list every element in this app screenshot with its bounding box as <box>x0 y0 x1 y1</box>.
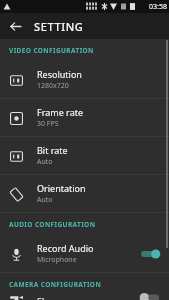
button[interactable]: Show camera <box>0 295 169 300</box>
button[interactable]: Resolution <box>0 61 169 98</box>
staticText: Microphone <box>37 255 77 265</box>
staticText: 03:58 <box>149 2 167 12</box>
staticText: SETTING <box>34 19 84 34</box>
staticText: Orientation <box>37 182 86 194</box>
staticText: Auto <box>37 157 53 167</box>
button[interactable]: Toggle on <box>139 247 161 261</box>
staticText: CAMERA CONFIGURATION <box>9 280 102 289</box>
staticText: Resolution <box>37 68 82 80</box>
button[interactable]: Toggle off <box>139 295 161 300</box>
button[interactable]: Back <box>4 15 26 37</box>
staticText: VIDEO CONFIGURATION <box>9 46 94 55</box>
staticText: 1280x720 <box>37 81 69 91</box>
button[interactable]: Frame rate <box>0 99 169 136</box>
staticText: Auto <box>37 195 53 205</box>
staticText: AUDIO CONFIGURATION <box>9 220 96 229</box>
staticText: Record Audio <box>37 242 94 254</box>
staticText: Show camera <box>37 295 94 300</box>
button[interactable]: Bit rate <box>0 137 169 174</box>
button[interactable]: Orientation <box>0 175 169 212</box>
staticText: Frame rate <box>37 106 83 118</box>
button[interactable]: Record Audio <box>0 235 169 272</box>
staticText: 30 FPS <box>37 119 59 129</box>
staticText: Bit rate <box>37 144 68 156</box>
